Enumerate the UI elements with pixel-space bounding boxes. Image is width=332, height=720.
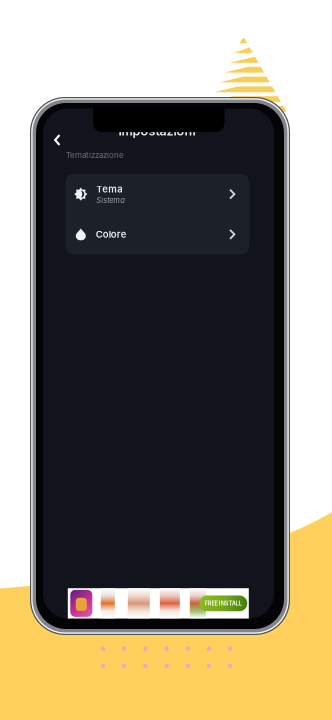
staticText: Sistema <box>96 196 125 205</box>
staticText: Tematizzazione <box>66 150 124 160</box>
staticText: Tema <box>96 183 122 195</box>
button[interactable]: Back <box>46 128 68 152</box>
button[interactable]: Tema <box>65 174 249 214</box>
staticText: Colore <box>96 229 127 240</box>
staticText: Impostazioni <box>118 123 195 139</box>
button[interactable]: Colore <box>65 214 249 254</box>
staticText: FREE INSTALL <box>205 600 242 607</box>
button[interactable]: FREE INSTALL <box>68 588 249 618</box>
